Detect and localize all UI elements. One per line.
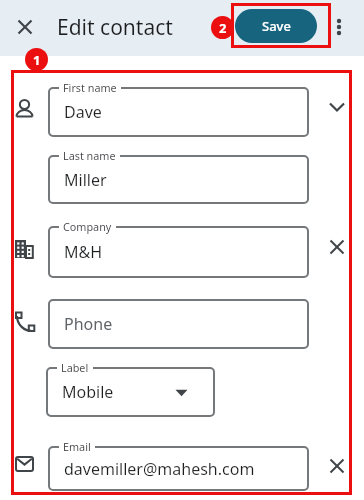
button[interactable]: Mobile	[46, 367, 215, 417]
button[interactable]	[326, 455, 348, 477]
staticText: 1	[33, 51, 41, 69]
button[interactable]: Dave	[48, 87, 309, 137]
button[interactable]: Phone	[48, 299, 309, 349]
button[interactable]	[328, 16, 350, 38]
staticText: Mobile	[62, 381, 114, 403]
staticText: 2	[219, 19, 227, 37]
staticText: Company	[63, 219, 112, 234]
staticText: Miller	[64, 169, 107, 191]
button[interactable]: Save	[235, 9, 317, 43]
staticText: Label	[61, 360, 89, 375]
button[interactable]: Miller	[48, 155, 309, 204]
staticText: davemiller@mahesh.com	[64, 458, 255, 480]
button[interactable]	[326, 96, 348, 118]
staticText: Email	[63, 439, 91, 454]
button[interactable]	[14, 16, 36, 38]
button[interactable]: M&H	[48, 226, 309, 278]
button[interactable]	[326, 236, 348, 258]
button[interactable]: davemiller@mahesh.com	[48, 446, 309, 491]
staticText: First name	[63, 80, 117, 95]
staticText: M&H	[64, 241, 103, 263]
staticText: Save	[262, 17, 291, 35]
staticText: Phone	[64, 313, 113, 335]
staticText: Dave	[64, 101, 102, 123]
staticText: Last name	[63, 148, 116, 163]
staticText: Edit contact	[57, 13, 173, 42]
